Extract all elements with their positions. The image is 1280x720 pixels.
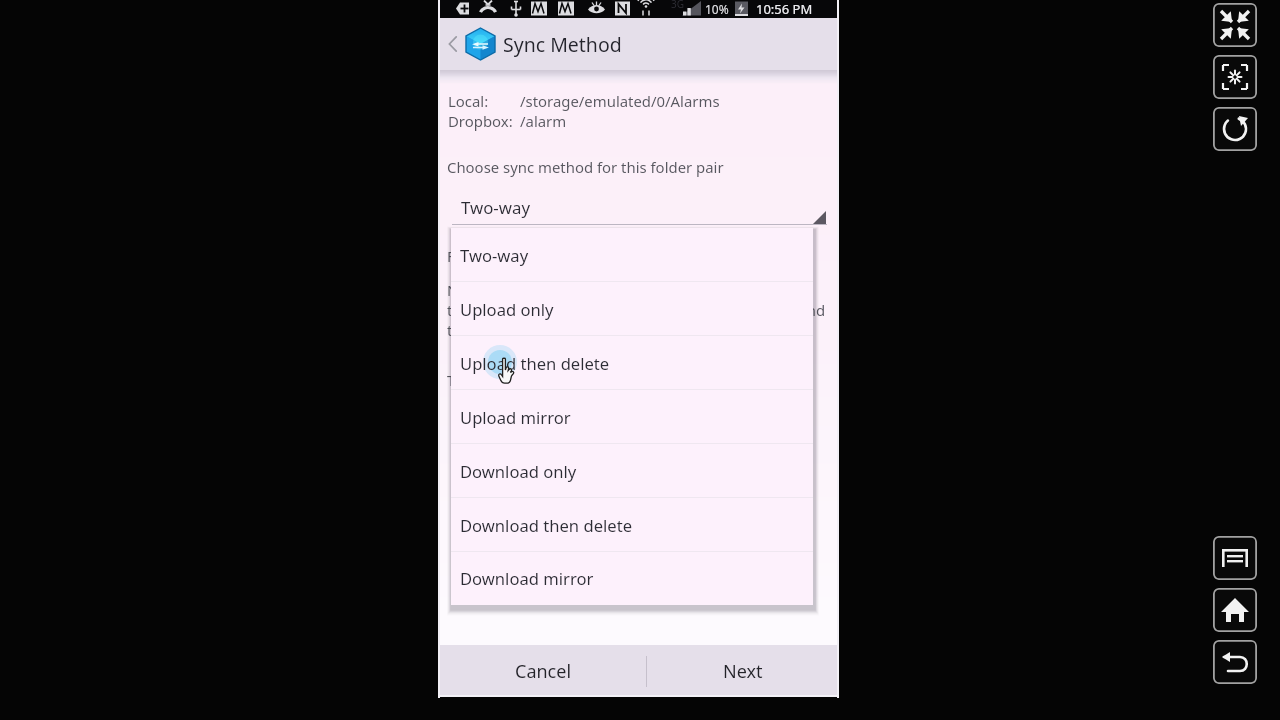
button[interactable]: Screenshot [1213, 55, 1257, 99]
button[interactable]: Next [646, 645, 839, 697]
staticText: Files are synced both ways. [447, 246, 637, 266]
button[interactable]: Download only [451, 444, 813, 498]
button[interactable]: Download then delete [451, 498, 813, 552]
staticText: the option is enabled for the folder pai… [447, 320, 725, 340]
button[interactable]: Navigate up [440, 18, 466, 70]
button[interactable]: Upload mirror [451, 390, 813, 444]
staticText: Cancel [515, 659, 572, 684]
button[interactable]: Home [1213, 588, 1257, 632]
staticText: Download only [460, 460, 577, 483]
staticText: This is the default sync method. [447, 370, 669, 390]
staticText: to the other side. Deleted files will al… [447, 300, 826, 320]
staticText: Two-way [460, 244, 529, 267]
button[interactable]: Sync Method [466, 18, 622, 70]
staticText: Download mirror [460, 567, 594, 590]
button[interactable]: Upload only [451, 282, 813, 336]
staticText: Upload only [460, 298, 554, 321]
staticText: 10:56 PM [756, 0, 813, 18]
button[interactable]: Download mirror [451, 552, 813, 605]
button[interactable]: Collapse [1213, 3, 1257, 47]
staticText: 3G [671, 0, 684, 11]
staticText: Next [723, 659, 763, 684]
staticText: Download then delete [460, 514, 632, 537]
button[interactable]: Two-way [452, 196, 827, 225]
staticText: /alarm [520, 111, 567, 131]
staticText: /storage/emulated/0/Alarms [520, 91, 720, 111]
button[interactable]: Two-way [451, 228, 813, 282]
staticText: Two-way [461, 196, 530, 219]
staticText: Dropbox: [448, 111, 513, 131]
staticText: Upload then delete [460, 352, 610, 375]
staticText: Choose sync method for this folder pair [447, 157, 724, 177]
button[interactable]: Upload then delete [451, 336, 813, 390]
button[interactable]: Back [1213, 640, 1257, 684]
button[interactable]: Recent apps [1213, 536, 1257, 580]
staticText: New and modified files on either side ar… [447, 280, 785, 300]
staticText: Sync Method [503, 31, 622, 58]
staticText: Upload mirror [460, 406, 571, 429]
button[interactable]: Cancel [440, 645, 646, 697]
staticText: 10% [705, 1, 729, 17]
staticText: Local: [448, 91, 489, 111]
button[interactable]: Rotate [1213, 107, 1257, 151]
